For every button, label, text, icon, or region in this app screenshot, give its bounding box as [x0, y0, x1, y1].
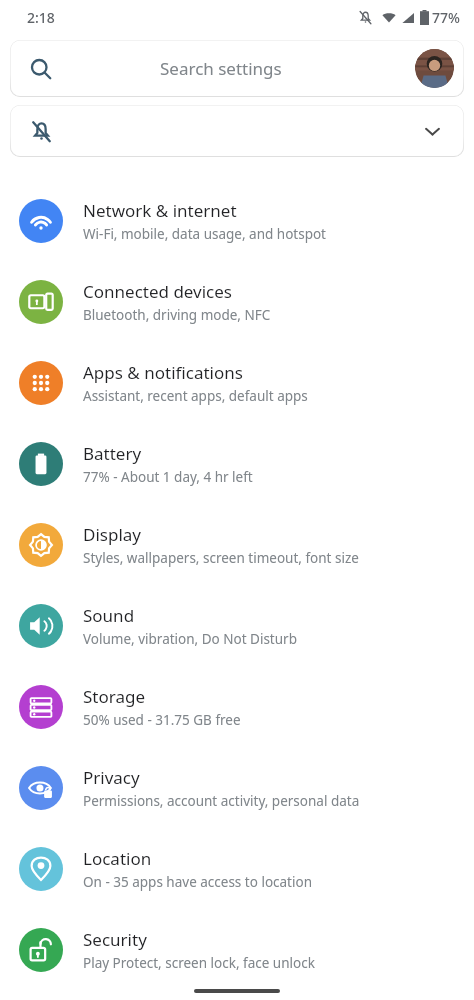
staticText: Security — [83, 928, 147, 951]
staticText: Search settings — [160, 57, 282, 80]
staticText: Battery — [83, 442, 142, 465]
button[interactable]: Battery — [0, 423, 474, 504]
button[interactable]: Account — [415, 49, 454, 88]
staticText: Connected devices — [83, 280, 233, 303]
button[interactable]: Sound — [0, 585, 474, 666]
staticText: 77% — [432, 8, 460, 27]
staticText: 77% - About 1 day, 4 hr left — [83, 468, 253, 486]
other: Notifications off — [30, 120, 53, 143]
staticText: Sound — [83, 604, 135, 627]
staticText: Bluetooth, driving mode, NFC — [83, 306, 271, 324]
staticText: Privacy — [83, 766, 140, 789]
staticText: Wi-Fi, mobile, data usage, and hotspot — [83, 225, 326, 243]
button[interactable]: Location — [0, 828, 474, 909]
button[interactable]: Security — [0, 909, 474, 990]
staticText: Network & internet — [83, 199, 237, 222]
staticText: 2:18 — [27, 8, 55, 27]
staticText: Volume, vibration, Do Not Disturb — [83, 630, 297, 648]
staticText: Play Protect, screen lock, face unlock — [83, 954, 315, 972]
staticText: Permissions, account activity, personal … — [83, 792, 360, 810]
staticText: Styles, wallpapers, screen timeout, font… — [83, 549, 359, 567]
staticText: Apps & notifications — [83, 361, 243, 384]
button[interactable]: Connected devices — [0, 261, 474, 342]
button[interactable]: Search — [10, 40, 464, 97]
button[interactable]: Network & internet — [0, 180, 474, 261]
staticText: Assistant, recent apps, default apps — [83, 387, 308, 405]
button[interactable]: Notifications off — [10, 105, 464, 157]
staticText: 50% used - 31.75 GB free — [83, 711, 241, 729]
button[interactable]: Storage — [0, 666, 474, 747]
other: Search — [30, 58, 52, 80]
button[interactable]: Apps & notifications — [0, 342, 474, 423]
button[interactable]: Privacy — [0, 747, 474, 828]
staticText: Location — [83, 847, 152, 870]
staticText: Display — [83, 523, 141, 546]
button[interactable]: Display — [0, 504, 474, 585]
other: Expand — [423, 122, 442, 141]
staticText: On - 35 apps have access to location — [83, 873, 312, 891]
staticText: Storage — [83, 685, 146, 708]
